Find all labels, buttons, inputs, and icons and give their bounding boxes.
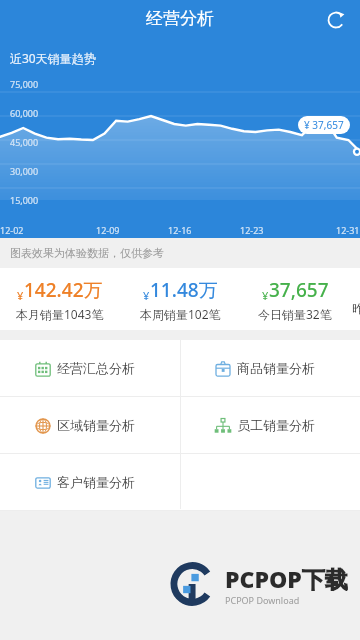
button[interactable]: 经营汇总分析 [0, 340, 180, 396]
button[interactable]: 员工销量分析 [180, 397, 360, 453]
staticText: ¥ [143, 288, 150, 303]
staticText: 45,000 [10, 136, 39, 148]
staticText: 12-31 [336, 224, 360, 236]
staticText: 12-09 [96, 224, 120, 236]
staticText: 15,000 [10, 194, 39, 206]
staticText: 近30天销量趋势 [10, 50, 96, 66]
staticText: PCPOP Download [225, 594, 300, 606]
staticText: 员工销量分析 [237, 417, 315, 433]
button[interactable]: ¥ [240, 268, 350, 330]
staticText: 60,000 [10, 107, 39, 119]
button[interactable]: 区域销量分析 [0, 397, 180, 453]
staticText: 30,000 [10, 165, 39, 177]
button[interactable]: 客户销量分析 [0, 454, 180, 510]
staticText: 75,000 [10, 78, 39, 90]
staticText: 区域销量分析 [57, 417, 135, 433]
staticText: ¥ 37,657 [304, 118, 344, 132]
staticText: PCPOP下载 [225, 563, 348, 594]
staticText: 经营汇总分析 [57, 360, 135, 376]
button[interactable]: ¥ [120, 268, 240, 330]
button[interactable]: Refresh [322, 6, 350, 34]
staticText: 本月销量1043笔 [16, 306, 104, 322]
staticText: 经营分析 [146, 8, 214, 29]
staticText: 图表效果为体验数据，仅供参考 [10, 246, 164, 260]
staticText: ¥ [17, 288, 24, 303]
staticText: 昨 [352, 301, 360, 316]
staticText: 37,657 [269, 277, 329, 303]
button[interactable]: 商品销量分析 [180, 340, 360, 396]
staticText: 12-16 [168, 224, 192, 236]
staticText: 今日销量32笔 [258, 306, 332, 322]
staticText: ¥ [262, 288, 269, 303]
staticText: 142.42万 [24, 277, 103, 303]
staticText: 12-02 [0, 224, 24, 236]
staticText: 11.48万 [150, 277, 218, 303]
button[interactable]: ¥ [0, 268, 120, 330]
staticText: 本周销量102笔 [140, 306, 221, 322]
staticText: 12-23 [240, 224, 264, 236]
staticText: 客户销量分析 [57, 474, 135, 490]
staticText: 商品销量分析 [237, 360, 315, 376]
